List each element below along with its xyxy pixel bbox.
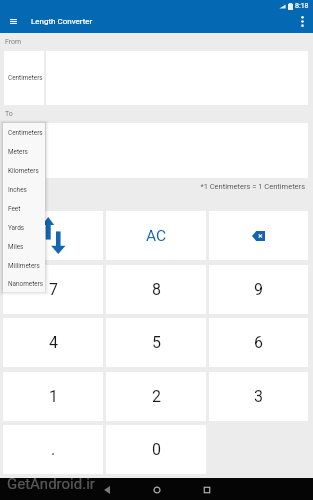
staticText: 3 [254,387,263,406]
staticText: Millimeters [8,262,40,270]
staticText: From [5,38,22,46]
button[interactable]: 7 [3,265,103,314]
staticText: To [5,110,13,118]
button[interactable]: 2 [106,372,206,421]
button[interactable]: Swap units [3,211,103,260]
staticText: 9 [254,280,263,299]
button[interactable]: Kilometers [3,161,45,180]
button[interactable]: Backspace [209,211,308,260]
button[interactable]: Centimeters [4,51,44,105]
button[interactable]: Centimeters [3,123,45,142]
button[interactable]: Miles [3,237,45,256]
button[interactable]: More options [292,11,313,32]
button[interactable]: Nanometers [3,275,45,292]
staticText: 8 [152,280,161,299]
button[interactable]: Millimeters [3,256,45,275]
button[interactable]: 9 [209,265,308,314]
staticText: Nanometers [8,280,44,288]
button[interactable]: Yards [3,218,45,237]
staticText: Inches [8,186,27,194]
button[interactable]: 4 [3,318,103,367]
button[interactable]: Home [132,478,182,500]
staticText: *1 Centimeters = 1 Centimeters [0,182,305,191]
staticText: Miles [8,243,24,251]
button[interactable]: 5 [106,318,206,367]
other: Backspace [252,231,265,241]
staticText: 2 [152,387,161,406]
button[interactable]: Open navigation drawer [3,11,24,32]
staticText: 8:18 [295,2,309,10]
staticText: . [51,440,56,459]
button[interactable]: AC [106,211,206,260]
staticText: Yards [8,224,25,232]
button[interactable]: 8 [106,265,206,314]
button[interactable]: Centimeters [4,123,44,178]
staticText: Meters [8,148,28,156]
staticText: 7 [49,280,58,299]
staticText: 0 [152,440,161,459]
staticText: Length Converter [31,17,93,26]
staticText: AC [146,227,167,245]
other: Swap units [41,217,65,254]
button[interactable]: Feet [3,199,45,218]
staticText: Centimeters [8,74,43,82]
staticText: Kilometers [8,167,39,175]
button[interactable]: 3 [209,372,308,421]
staticText: 1 [49,387,58,406]
button[interactable]: 0 [106,425,206,474]
staticText: Feet [8,205,21,213]
staticText: Centimeters [8,129,43,137]
button[interactable]: Back [82,478,132,500]
staticText: GetAndroid.ir [7,475,95,493]
staticText: 6 [254,333,263,352]
staticText: Centimeters [8,147,43,155]
button[interactable]: Meters [3,142,45,161]
button[interactable]: 1 [3,372,103,421]
button[interactable]: Recent apps [182,478,232,500]
button[interactable]: Inches [3,180,45,199]
staticText: 5 [152,333,161,352]
staticText: 4 [49,333,58,352]
button[interactable]: 6 [209,318,308,367]
